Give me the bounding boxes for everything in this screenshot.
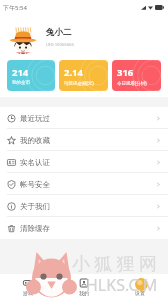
staticText: 实名认证	[20, 158, 50, 167]
staticText: 214	[12, 66, 29, 79]
staticText: 下午5:54	[3, 4, 27, 12]
staticText: 我的金币	[12, 80, 30, 86]
staticText: UID:10066666	[46, 42, 74, 48]
staticText: 最近玩过	[20, 114, 50, 123]
button[interactable]: 316	[112, 60, 161, 91]
staticText: 关于我们	[20, 202, 50, 211]
button[interactable]: 兔小二	[0, 15, 168, 60]
button[interactable]: Profile	[56, 274, 112, 300]
staticText: 清除缓存	[20, 224, 50, 233]
staticText: 帐号安全	[20, 180, 50, 189]
button[interactable]: 实名认证	[0, 151, 168, 173]
button[interactable]: 清除缓存	[0, 217, 168, 239]
staticText: 小狐狸网	[72, 253, 162, 276]
button[interactable]: 帐号安全	[0, 173, 168, 195]
button[interactable]: 214	[7, 60, 55, 91]
staticText: 可提现金额(元)	[64, 80, 94, 86]
button[interactable]: 关于我们	[0, 195, 168, 217]
button[interactable]: Games	[0, 274, 56, 300]
staticText: 今日观看(分钟)	[117, 80, 147, 86]
staticText: HLKS.C M	[86, 274, 158, 296]
button[interactable]: Settings	[112, 274, 168, 300]
staticText: 2.14	[64, 66, 83, 79]
button[interactable]: 2.14	[59, 60, 108, 91]
staticText: 我的收藏	[20, 136, 50, 145]
staticText: 兔小二	[46, 27, 72, 38]
staticText: 游戏	[23, 290, 33, 296]
button[interactable]: 最近玩过	[0, 107, 168, 129]
staticText: 我的	[79, 290, 89, 296]
button[interactable]: 我的收藏	[0, 129, 168, 151]
staticText: 设置	[135, 290, 145, 296]
staticText: 316	[117, 66, 134, 79]
